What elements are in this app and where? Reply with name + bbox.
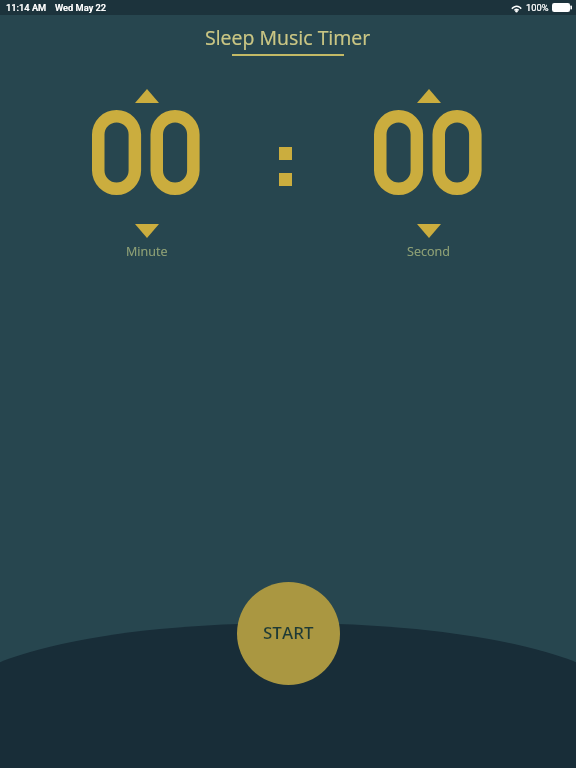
staticText: Second	[407, 243, 451, 260]
staticText: Wed May 22	[55, 2, 107, 13]
button[interactable]: Increase Second	[417, 89, 441, 103]
staticText: Minute	[126, 243, 168, 260]
staticText: Sleep Music Timer	[205, 24, 371, 51]
staticText: 100%	[526, 2, 549, 13]
button[interactable]: START	[237, 582, 340, 685]
staticText: START	[263, 621, 314, 644]
staticText: 11:14 AM	[6, 2, 47, 13]
button[interactable]: Decrease Second	[417, 224, 441, 238]
button[interactable]: Decrease Minute	[135, 224, 159, 238]
button[interactable]: Increase Minute	[135, 89, 159, 103]
